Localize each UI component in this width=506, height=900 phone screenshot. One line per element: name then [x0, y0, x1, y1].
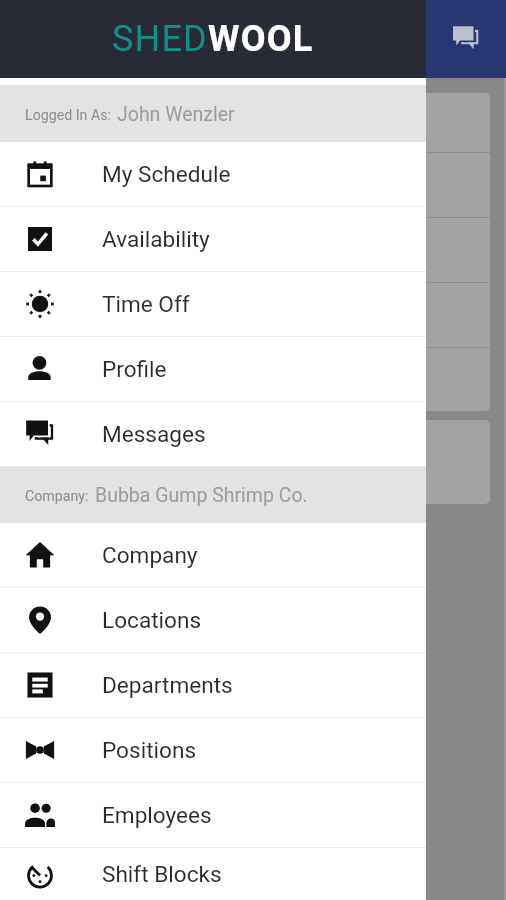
staticText: Locations [102, 607, 202, 633]
staticText: Time Off [102, 291, 190, 317]
button[interactable]: Positions [0, 718, 426, 782]
staticText: Company: [25, 488, 89, 505]
staticText: Bubba Gump Shrimp Co. [95, 484, 308, 507]
staticText: Logged In As: [25, 107, 111, 124]
button[interactable]: Employees [0, 783, 426, 847]
button[interactable]: Availability [0, 207, 426, 271]
button[interactable]: Locations [0, 588, 426, 652]
staticText: Positions [102, 737, 197, 763]
button[interactable]: Company [0, 523, 426, 587]
button[interactable]: My Schedule [0, 142, 426, 206]
staticText: Messages [102, 421, 206, 447]
staticText: Departments [102, 672, 233, 698]
staticText: My Schedule [102, 161, 231, 187]
button[interactable]: Shift Blocks [0, 848, 426, 900]
button[interactable]: Profile [0, 337, 426, 401]
button[interactable]: Messages [0, 402, 426, 466]
button[interactable]: Departments [0, 653, 426, 717]
staticText: Shift Blocks [102, 861, 222, 887]
staticText: Availability [102, 226, 210, 252]
button[interactable]: Messages [426, 0, 506, 78]
staticText: Profile [102, 356, 167, 382]
button[interactable]: Time Off [0, 272, 426, 336]
staticText: Employees [102, 802, 212, 828]
staticText: WOOL [208, 18, 314, 60]
staticText: SHED [112, 18, 208, 60]
staticText: Company [102, 542, 198, 568]
staticText: John Wenzler [117, 103, 235, 126]
